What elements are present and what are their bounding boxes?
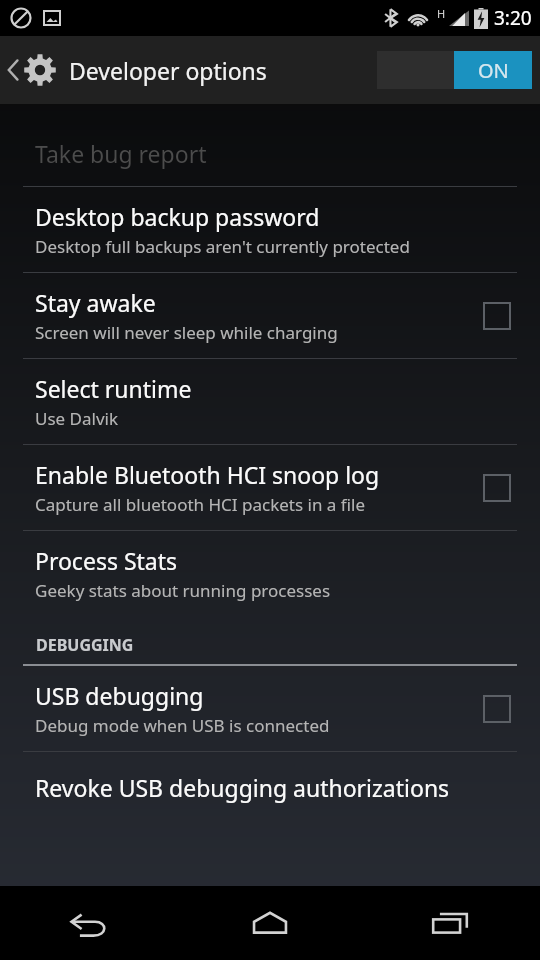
- staticText: Capture all bluetooth HCI packets in a f…: [35, 493, 387, 516]
- button[interactable]: Back: [0, 45, 275, 95]
- button[interactable]: USB debugging: [0, 666, 540, 751]
- staticText: Screen will never sleep while charging: [35, 321, 338, 344]
- staticText: Geeky stats about running processes: [35, 579, 331, 602]
- staticText: Debug mode when USB is connected: [35, 714, 330, 737]
- button[interactable]: Enable Bluetooth HCI snoop log: [0, 445, 540, 530]
- button[interactable]: USB debugging checkbox: [476, 688, 518, 730]
- button[interactable]: Enable Bluetooth HCI snoop log checkbox: [476, 467, 518, 509]
- staticText: Revoke USB debugging authorizations: [35, 772, 450, 803]
- button[interactable]: Back: [0, 886, 180, 960]
- button[interactable]: Desktop backup password: [0, 187, 540, 272]
- staticText: Enable Bluetooth HCI snoop log: [35, 459, 380, 490]
- staticText: USB debugging: [35, 680, 204, 711]
- button[interactable]: Home: [180, 886, 360, 960]
- staticText: Use Dalvik: [35, 407, 119, 430]
- staticText: H: [437, 6, 446, 21]
- staticText: Desktop backup password: [35, 201, 320, 232]
- staticText: Developer options: [69, 55, 267, 86]
- other: Back: [6, 58, 20, 82]
- staticText: Desktop full backups aren't currently pr…: [35, 235, 410, 258]
- staticText: Stay awake: [35, 287, 156, 318]
- button[interactable]: Process Stats: [0, 531, 540, 616]
- staticText: ON: [478, 57, 509, 84]
- staticText: 3:20: [494, 5, 532, 31]
- staticText: Take bug report: [35, 138, 207, 169]
- staticText: Process Stats: [35, 545, 178, 576]
- staticText: DEBUGGING: [36, 634, 134, 656]
- button[interactable]: Recent apps: [360, 886, 540, 960]
- button[interactable]: Stay awake checkbox: [476, 295, 518, 337]
- button[interactable]: Stay awake: [0, 273, 540, 358]
- button[interactable]: Revoke USB debugging authorizations: [0, 752, 540, 823]
- button[interactable]: Developer options on: [377, 51, 532, 89]
- staticText: Select runtime: [35, 373, 192, 404]
- button[interactable]: Take bug report: [0, 120, 540, 186]
- button[interactable]: Select runtime: [0, 359, 540, 444]
